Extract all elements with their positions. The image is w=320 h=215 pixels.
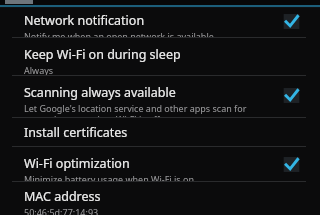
- other: Checked: [283, 156, 300, 173]
- other: Checked: [283, 13, 300, 30]
- staticText: Wi-Fi optimization: [24, 155, 130, 172]
- staticText: Notify me when an open network is availa…: [24, 30, 214, 37]
- button[interactable]: Wi-Fi optimization: [0, 147, 320, 181]
- staticText: Scanning always available: [24, 84, 176, 101]
- button[interactable]: Install certificates: [0, 118, 320, 146]
- staticText: 50:46:5d:77:14:93: [24, 206, 99, 215]
- staticText: Network notification: [24, 12, 145, 29]
- button[interactable]: Checked: [283, 87, 300, 104]
- staticText: Minimize battery usage when Wi-Fi is on: [24, 173, 194, 181]
- other: Checked: [283, 87, 300, 104]
- button[interactable]: Scanning always available: [0, 76, 320, 117]
- button[interactable]: Keep Wi-Fi on during sleep: [0, 38, 320, 75]
- button[interactable]: Checked: [283, 156, 300, 173]
- staticText: MAC address: [24, 188, 101, 205]
- staticText: Install certificates: [24, 124, 128, 141]
- staticText: Let Google's location service and other …: [24, 102, 277, 117]
- button[interactable]: Checked: [283, 13, 300, 30]
- staticText: Always: [24, 64, 54, 75]
- button[interactable]: Network notification: [0, 8, 320, 37]
- staticText: Keep Wi-Fi on during sleep: [24, 46, 181, 63]
- button[interactable]: MAC address: [0, 182, 320, 215]
